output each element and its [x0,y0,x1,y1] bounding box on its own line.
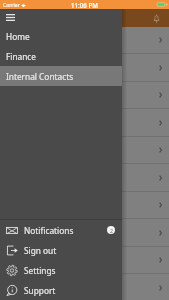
staticText: Notifications [24,225,74,236]
button[interactable] [0,274,169,300]
staticText: Home [6,31,30,42]
button[interactable] [0,54,169,82]
staticText: 11:06 PM [71,1,98,9]
staticText: Carrier [3,1,20,8]
staticText: Finance [6,51,37,62]
button[interactable]: Notifications [147,9,165,27]
button[interactable] [0,246,169,274]
button[interactable] [0,191,169,219]
button[interactable]: Sign out [0,240,122,260]
staticText: 2 [110,227,113,234]
button[interactable] [0,136,169,164]
button[interactable] [0,109,169,137]
button[interactable]: Notifications [0,220,122,240]
staticText: Settings [24,265,56,276]
staticText: Support [24,285,56,296]
button[interactable] [0,219,169,247]
staticText: Sign out [24,245,57,256]
button[interactable] [0,26,169,54]
button[interactable]: Internal Contacts [0,66,122,86]
button[interactable]: Support [0,280,122,300]
button[interactable]: Open navigation menu [1,9,19,26]
staticText: Internal Contacts [6,71,74,82]
button[interactable] [0,164,169,192]
button[interactable]: Settings [0,260,122,280]
button[interactable]: Finance [0,46,122,66]
button[interactable]: Home [0,26,122,46]
button[interactable] [0,81,169,109]
